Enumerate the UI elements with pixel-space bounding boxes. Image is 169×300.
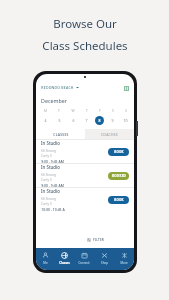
staticText: 9:00 - 9:45 AM	[41, 183, 64, 187]
staticText: COACHES	[101, 132, 118, 136]
staticText: F	[99, 108, 101, 112]
button[interactable]: 10	[119, 115, 132, 125]
button[interactable]: In Studio	[36, 164, 134, 187]
staticText: Browse Our	[53, 16, 117, 32]
staticText: 4	[44, 118, 47, 123]
button[interactable]: In Studio	[36, 140, 134, 163]
staticText: BOOKED	[112, 174, 126, 178]
staticText: T	[86, 108, 88, 112]
staticText: 9:00 - 9:45 AM	[41, 159, 64, 163]
button[interactable]: More	[114, 252, 134, 270]
staticText: CLASSES	[53, 132, 69, 136]
staticText: Me	[43, 261, 48, 265]
staticText: More	[120, 261, 128, 265]
staticText: 9	[111, 118, 114, 123]
button[interactable]: 5	[52, 115, 66, 125]
staticText: BOOK	[114, 198, 124, 202]
staticText: Carly S	[41, 153, 52, 157]
staticText: T	[58, 108, 60, 112]
button[interactable]: Me	[36, 252, 55, 270]
staticText: 10	[123, 118, 128, 123]
button[interactable]: BOOKED	[108, 172, 129, 180]
button[interactable]: Menu	[123, 85, 129, 91]
staticText: 60 Strong	[41, 172, 56, 176]
staticText: 8	[98, 118, 101, 123]
button[interactable]: Connect	[74, 252, 94, 270]
staticText: BOOK	[114, 150, 124, 154]
staticText: S	[112, 108, 114, 112]
staticText: Classes	[59, 261, 70, 265]
staticText: Carly S	[41, 177, 52, 181]
staticText: December	[41, 97, 67, 104]
button[interactable]: FILTER	[82, 235, 108, 244]
button[interactable]: Shop	[94, 252, 114, 270]
staticText: 7	[85, 118, 88, 123]
button[interactable]: COACHES	[85, 129, 134, 139]
button[interactable]: In Studio	[36, 188, 134, 211]
button[interactable]: BOOK	[108, 196, 129, 204]
staticText: 60 Strong	[41, 196, 56, 200]
button[interactable]: 9	[106, 115, 119, 125]
button[interactable]: Classes	[55, 252, 74, 270]
button[interactable]: 8	[93, 115, 106, 125]
button[interactable]: BOOK	[108, 148, 129, 156]
staticText: W	[71, 108, 75, 112]
staticText: Shop	[101, 261, 108, 265]
staticText: Carly S	[41, 201, 52, 205]
staticText: In Studio	[41, 188, 60, 194]
button[interactable]: CLASSES	[36, 129, 85, 139]
staticText: 60 Strong	[41, 148, 56, 152]
staticText: Connect	[78, 261, 90, 265]
staticText: In Studio	[41, 140, 60, 146]
staticText: M	[44, 108, 47, 112]
staticText: In Studio	[41, 164, 60, 170]
button[interactable]: 6	[66, 115, 80, 125]
staticText: 5	[58, 118, 61, 123]
staticText: FILTER	[93, 238, 104, 242]
button[interactable]: 7	[80, 115, 93, 125]
button[interactable]: REDONDO BEACH	[41, 85, 79, 90]
staticText: 10:00 - 10:45 A	[41, 207, 65, 211]
staticText: 6	[72, 118, 75, 123]
staticText: Class Schedules	[42, 38, 128, 54]
button[interactable]: 4	[38, 115, 52, 125]
staticText: S	[125, 108, 127, 112]
staticText: REDONDO BEACH	[41, 85, 74, 90]
